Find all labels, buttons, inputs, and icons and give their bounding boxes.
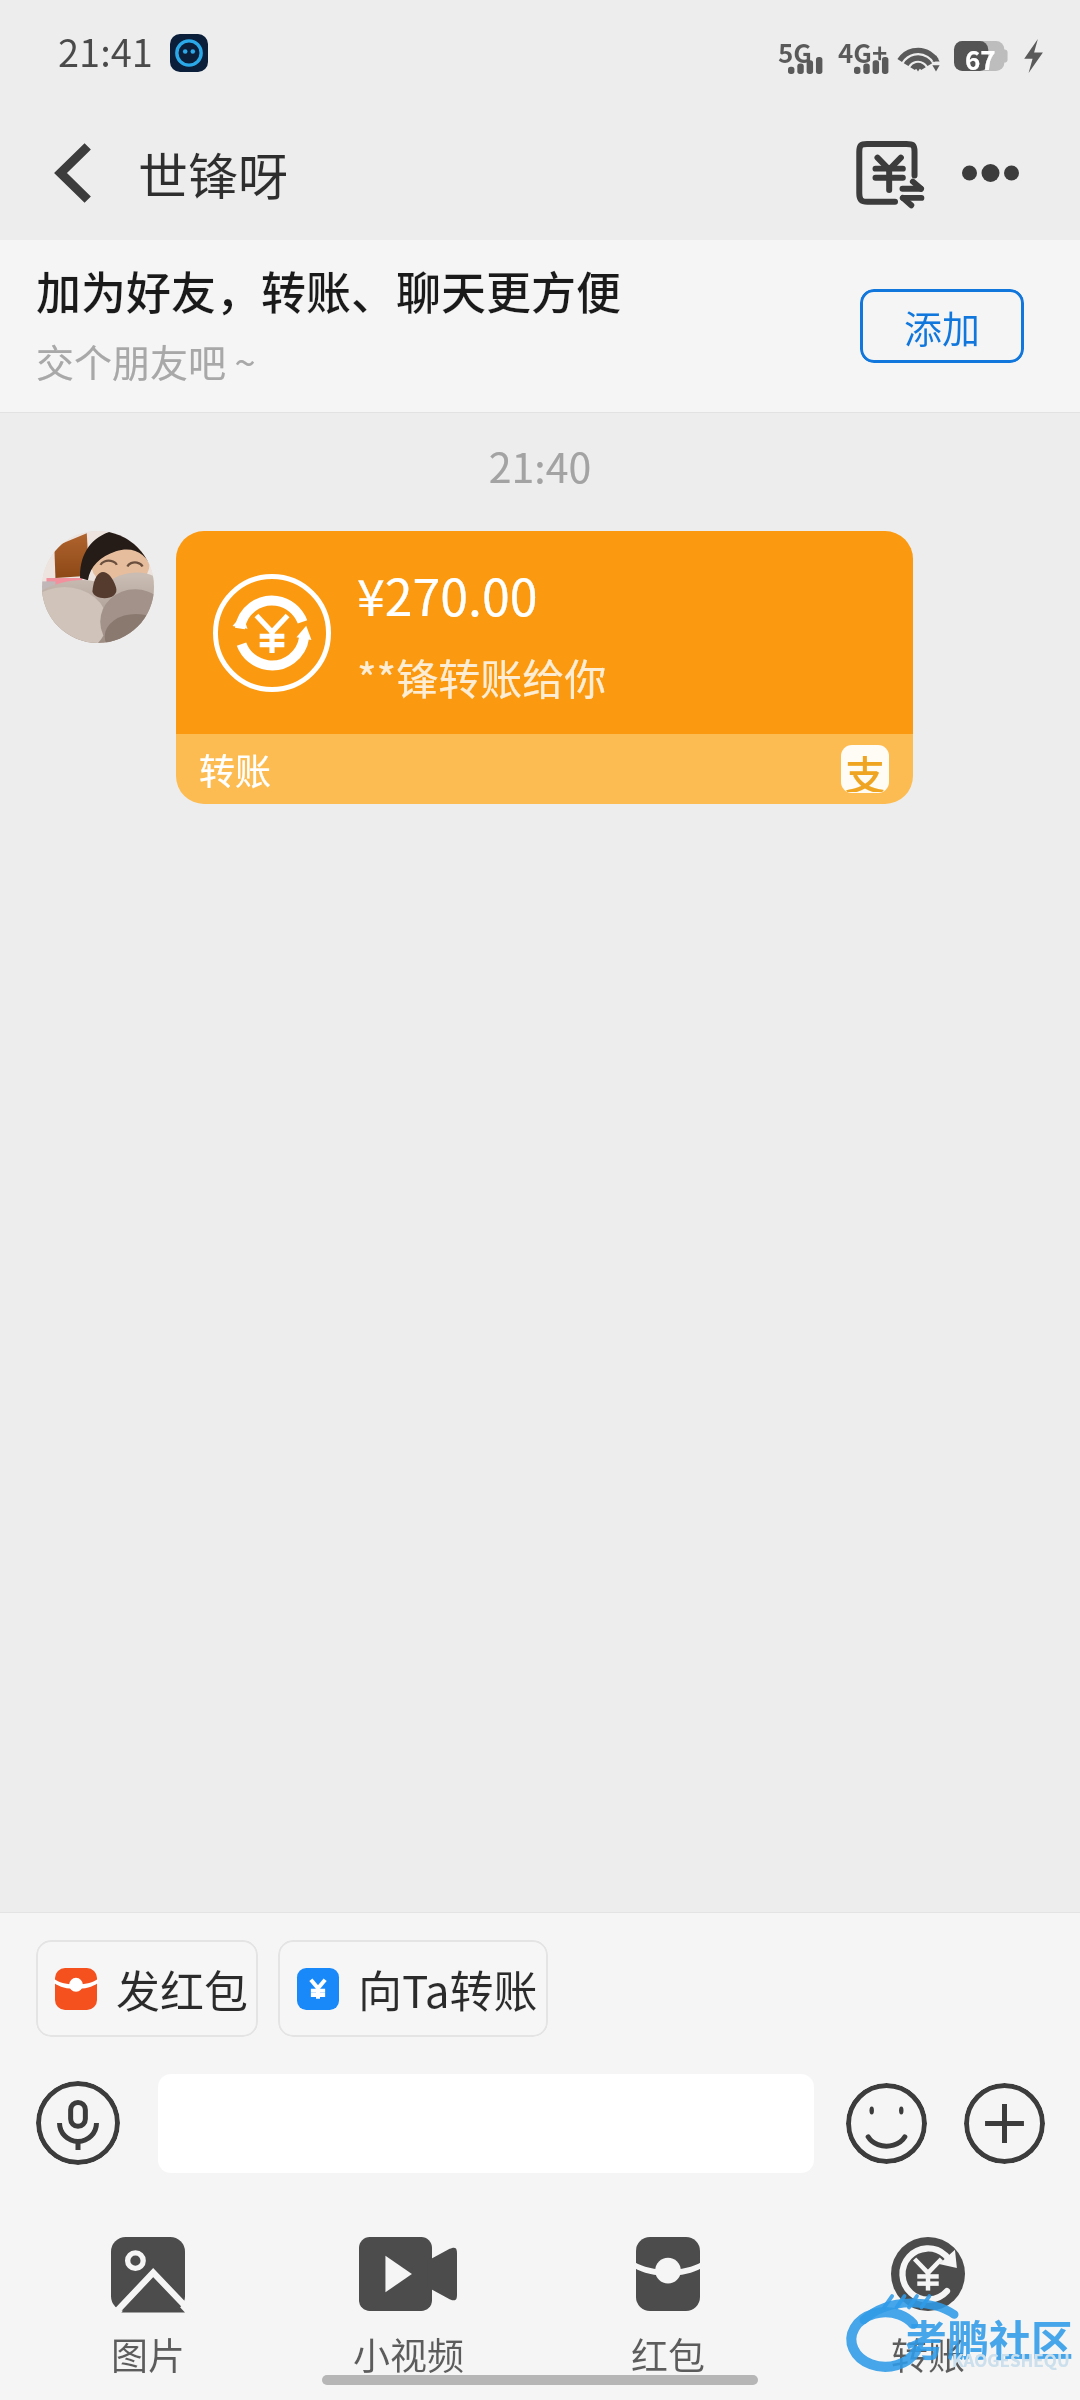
button[interactable]: Back [20, 121, 124, 225]
staticText: 5G [778, 33, 812, 69]
staticText: 交个朋友吧 ~ [36, 333, 256, 388]
button[interactable]: 发红包 [36, 1940, 258, 2037]
staticText: 4G+ [838, 33, 888, 69]
staticText: 图片 [111, 2327, 185, 2381]
button[interactable]: More functions [964, 2083, 1045, 2164]
staticText: 67 [965, 40, 996, 70]
staticText: 21:40 [0, 435, 1080, 494]
staticText: ¥270.00 [357, 558, 538, 630]
button[interactable]: 向Ta转账 [278, 1940, 548, 2037]
staticText: 添加 [904, 299, 981, 354]
staticText: 转账 [199, 743, 272, 795]
button[interactable]: Transfer [841, 125, 937, 221]
staticText: 考鹏社区 [905, 2307, 1074, 2368]
staticText: 转账 [891, 2327, 965, 2381]
button[interactable]: 添加 [860, 289, 1024, 363]
staticText: 21:41 [58, 23, 153, 78]
staticText: KAOGESHEQU [952, 2347, 1070, 2372]
staticText: 小视频 [353, 2327, 464, 2381]
button[interactable]: 小视频 [278, 2183, 538, 2381]
button[interactable]: 红包 [538, 2183, 798, 2381]
button[interactable]: More options [942, 125, 1038, 221]
staticText: 向Ta转账 [358, 1957, 538, 2021]
staticText: 支 [845, 745, 885, 792]
button[interactable]: 转账 [798, 2183, 1058, 2381]
button[interactable]: ¥270.00 [176, 531, 913, 804]
staticText: 红包 [631, 2327, 705, 2381]
button[interactable]: Emoji [846, 2083, 927, 2164]
button[interactable]: Voice message [36, 2081, 120, 2165]
staticText: 加为好友，转账、聊天更方便 [36, 258, 622, 323]
staticText: **锋转账给你 [357, 646, 607, 707]
button[interactable]: 图片 [18, 2183, 278, 2381]
staticText: 世锋呀 [138, 137, 288, 209]
staticText: 发红包 [116, 1957, 248, 2021]
